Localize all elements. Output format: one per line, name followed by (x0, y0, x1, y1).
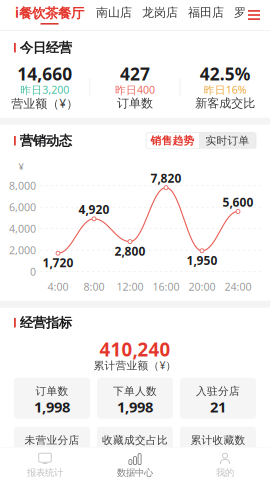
staticText: 昨日3,200 (20, 83, 69, 97)
staticText: 42.5% (200, 62, 251, 85)
staticText: 营销动态 (20, 132, 72, 149)
button[interactable]: 销售趋势 (146, 133, 199, 149)
staticText: 24:00 (224, 280, 251, 294)
button[interactable]: 订单数 (14, 378, 90, 419)
staticText: 1,998 (34, 397, 70, 416)
staticText: 1,950 (186, 252, 217, 268)
staticText: 销售趋势 (150, 134, 194, 147)
staticText: 1,998 (117, 397, 153, 416)
staticText: i餐饮茶餐厅 (15, 4, 84, 21)
staticText: 16:00 (152, 280, 179, 294)
staticText: 4,920 (78, 201, 109, 217)
button[interactable]: 入驻分店 (180, 378, 256, 419)
button[interactable]: 南山店 (96, 0, 132, 30)
staticText: 福田店 (188, 5, 224, 20)
button[interactable]: 实时订单 (199, 133, 256, 149)
staticText: 未营业分店 (24, 434, 79, 447)
staticText: 427 (120, 62, 150, 85)
staticText: 昨日400 (115, 83, 155, 97)
staticText: 累计收藏数 (190, 434, 245, 447)
staticText: 8:00 (83, 280, 104, 294)
staticText: 0 (30, 265, 36, 279)
staticText: 订单数 (35, 385, 68, 398)
button[interactable]: 收藏成交占比 (97, 427, 173, 468)
staticText: 昨日16% (204, 83, 247, 97)
staticText: 21 (210, 397, 226, 416)
staticText: 我的 (216, 467, 234, 478)
button[interactable]: 罗 (234, 0, 246, 30)
staticText: 新客成交比 (195, 96, 255, 110)
button[interactable]: i餐饮茶餐厅 (15, 0, 84, 30)
staticText: ¥ (18, 160, 23, 173)
staticText: 入驻分店 (196, 385, 240, 398)
button[interactable]: 累计收藏数 (180, 427, 256, 468)
button[interactable]: 未营业分店 (14, 427, 90, 468)
staticText: 2,000 (9, 243, 36, 257)
staticText: 4,000 (9, 222, 36, 236)
staticText: 4:00 (47, 280, 68, 294)
button[interactable]: 福田店 (188, 0, 224, 30)
staticText: 实时订单 (205, 134, 249, 147)
staticText: 980 (206, 446, 230, 465)
staticText: 12:00 (116, 280, 143, 294)
staticText: 报表统计 (27, 467, 63, 478)
staticText: 2,800 (114, 243, 145, 259)
staticText: 经营指标 (20, 314, 72, 331)
staticText: 累计营业额（¥） (93, 358, 176, 372)
staticText: 66% (120, 446, 149, 465)
button[interactable]: 报表统计 (0, 448, 90, 480)
button[interactable]: 我的 (180, 448, 270, 480)
staticText: 下单人数 (113, 385, 157, 398)
staticText: 收藏成交占比 (102, 434, 168, 447)
staticText: 数据中心 (117, 467, 153, 478)
button[interactable]: 龙岗店 (142, 0, 178, 30)
staticText: 罗 (234, 5, 246, 20)
button[interactable]: 菜单 (246, 0, 262, 30)
staticText: 5,600 (222, 194, 253, 210)
staticText: 410,240 (99, 337, 170, 362)
staticText: 8,000 (9, 179, 36, 193)
staticText: 20:00 (188, 280, 215, 294)
staticText: 14,660 (17, 62, 72, 85)
button[interactable]: 数据中心 (90, 448, 180, 480)
button[interactable]: 下单人数 (97, 378, 173, 419)
staticText: 营业额（¥） (11, 95, 78, 111)
staticText: 6,000 (9, 200, 36, 214)
staticText: 南山店 (96, 5, 132, 20)
staticText: 龙岗店 (142, 5, 178, 20)
staticText: 7,820 (150, 170, 181, 186)
staticText: 今日经营 (20, 39, 72, 56)
staticText: 订单数 (117, 96, 153, 110)
staticText: 3 (48, 446, 56, 465)
staticText: 1,720 (42, 255, 73, 271)
